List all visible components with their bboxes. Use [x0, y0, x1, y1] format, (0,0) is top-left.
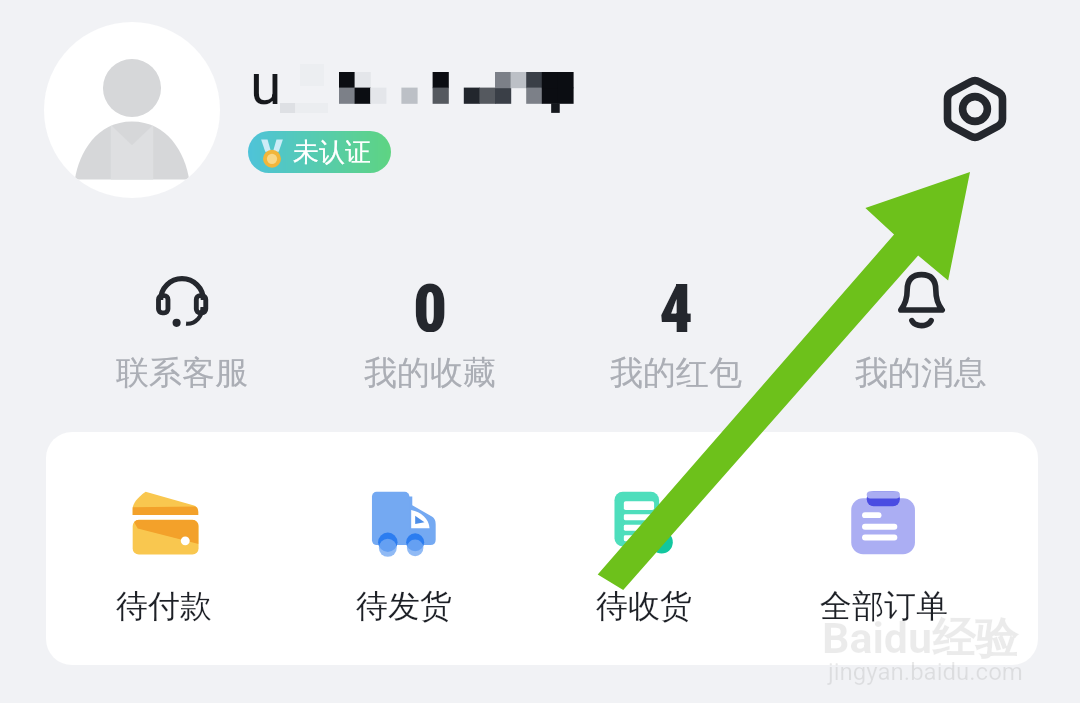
- staticText: jingyan.baidu.com: [828, 658, 1023, 686]
- other: Messages: [898, 272, 945, 330]
- staticText: 我的收藏: [364, 352, 496, 394]
- staticText: 待发货: [356, 586, 452, 623]
- staticText: u: [250, 51, 282, 118]
- staticText: 我的红包: [610, 352, 742, 394]
- staticText: 0: [413, 270, 448, 332]
- button[interactable]: 待发货: [304, 488, 504, 623]
- button[interactable]: 全部订单: [784, 488, 984, 623]
- button[interactable]: 待付款: [64, 488, 264, 623]
- button[interactable]: Avatar: [44, 22, 220, 198]
- button[interactable]: 4: [576, 270, 776, 398]
- staticText: Baidu经验: [822, 612, 1019, 666]
- button[interactable]: 待收货: [544, 488, 744, 623]
- staticText: 4: [659, 270, 694, 332]
- staticText: 待收货: [596, 586, 692, 623]
- button[interactable]: Messages: [821, 270, 1021, 398]
- staticText: 我的消息: [855, 352, 987, 394]
- button[interactable]: 0: [330, 270, 530, 398]
- other: Customer service: [155, 274, 209, 328]
- button[interactable]: Customer service: [82, 270, 282, 398]
- staticText: 联系客服: [116, 352, 248, 394]
- staticText: 待付款: [116, 586, 212, 623]
- staticText: 未认证: [293, 136, 371, 169]
- staticText: 全部订单: [820, 586, 948, 623]
- button[interactable]: 未认证: [248, 131, 391, 173]
- button[interactable]: Settings: [931, 65, 1019, 153]
